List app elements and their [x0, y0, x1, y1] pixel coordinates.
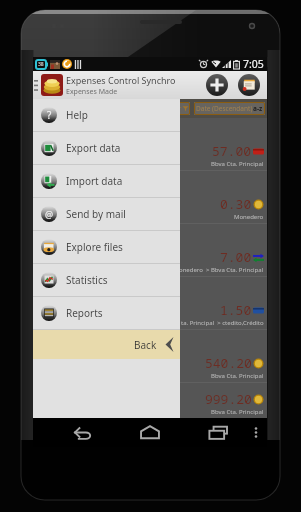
staticText: Export data [66, 141, 121, 155]
button[interactable]: 1.50 [33, 277, 267, 329]
button[interactable]: Import data [33, 165, 180, 197]
staticText: ? [47, 108, 52, 122]
staticText: Reports [66, 306, 103, 320]
staticText: Explore files [66, 240, 123, 254]
button[interactable]: 0.30 [33, 171, 267, 223]
staticText: Import data [66, 174, 123, 188]
button[interactable]: Back [33, 330, 180, 359]
staticText: ta. Principal > ctedito,Crédito [181, 319, 264, 327]
staticText: 1.50 [220, 301, 252, 319]
staticText: 7:05 [243, 57, 264, 71]
staticText: Send by mail [66, 207, 126, 221]
staticText: onedero > Bbva Cta. Principal [179, 266, 264, 274]
button[interactable]: Statistics [33, 264, 180, 296]
staticText: 0.30 [220, 195, 252, 213]
button[interactable]: 57.00 [33, 118, 267, 170]
staticText: Expenses Control Synchro [66, 74, 176, 86]
button[interactable]: Add expense [206, 74, 228, 96]
button[interactable]: 999.20 [33, 383, 267, 418]
button[interactable]: Recent apps [203, 418, 235, 447]
button[interactable]: 7.00 [33, 224, 267, 276]
button[interactable]: Export data [33, 132, 180, 164]
staticText: 38 [38, 61, 44, 68]
staticText: a-z [253, 104, 263, 113]
staticText: Bbva Cta. Principal [211, 372, 264, 380]
button[interactable]: Explore files [33, 231, 180, 263]
staticText: er [175, 104, 182, 113]
staticText: Bbva Cta. Principal [211, 408, 264, 416]
button[interactable]: er [175, 102, 189, 115]
staticText: 999.20 [205, 390, 252, 408]
staticText: @ [45, 208, 54, 220]
staticText: Bbva Cta. Principal [211, 160, 264, 168]
staticText: Statistics [66, 273, 108, 287]
button[interactable]: Open files [238, 74, 260, 96]
staticText: Back [134, 338, 157, 352]
staticText: 7.00 [220, 248, 252, 266]
staticText: 57.00 [212, 142, 252, 160]
button[interactable]: ? [33, 99, 180, 131]
staticText: Help [66, 108, 88, 122]
button[interactable]: Back [66, 418, 98, 447]
button[interactable]: Home [134, 418, 166, 447]
staticText: 540.20 [205, 354, 252, 372]
staticText: Monedero [234, 213, 264, 221]
button[interactable]: 540.20 [33, 330, 267, 382]
button[interactable]: @ [33, 198, 180, 230]
button[interactable]: Date (Descendant) [196, 102, 263, 115]
staticText: Date (Descendant) [196, 104, 253, 113]
button[interactable]: Reports [33, 297, 180, 329]
button[interactable]: More options [245, 418, 267, 447]
staticText: Expenses Made [66, 87, 118, 97]
